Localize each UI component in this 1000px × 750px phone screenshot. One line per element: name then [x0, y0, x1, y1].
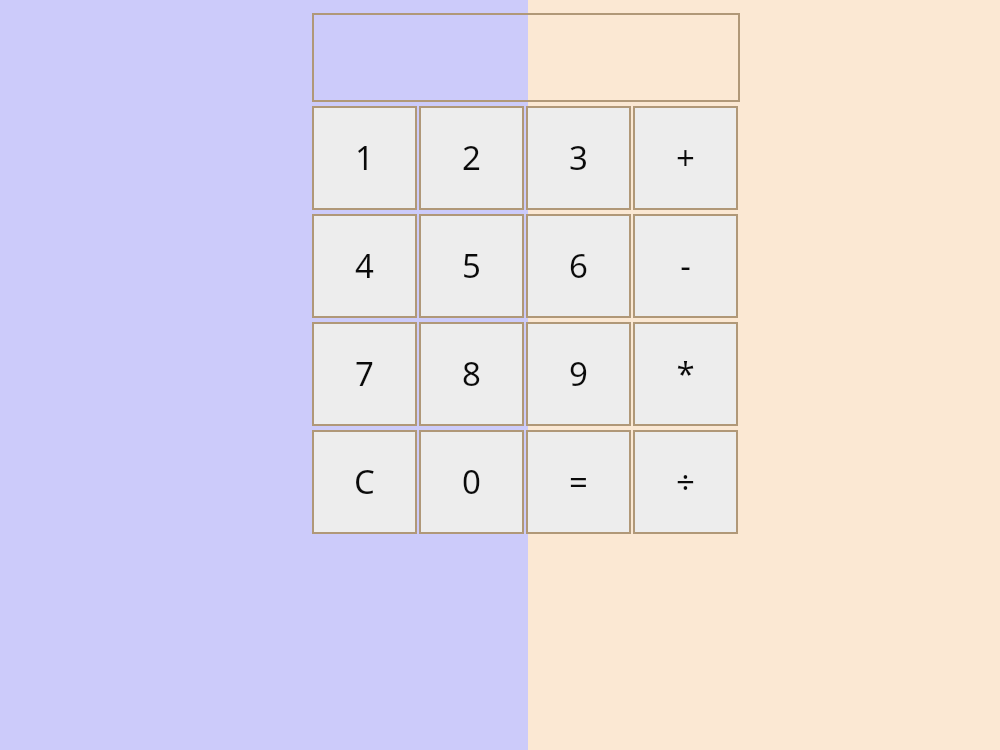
- staticText: +: [676, 135, 695, 180]
- button[interactable]: 8: [419, 322, 524, 426]
- button[interactable]: 2: [419, 106, 524, 210]
- staticText: 7: [355, 351, 374, 396]
- staticText: 3: [569, 135, 588, 180]
- button[interactable]: 6: [526, 214, 631, 318]
- staticText: *: [676, 351, 695, 396]
- staticText: -: [680, 243, 691, 288]
- button[interactable]: Display: [312, 13, 740, 102]
- button[interactable]: 0: [419, 430, 524, 534]
- staticText: 5: [462, 243, 481, 288]
- button[interactable]: C: [312, 430, 417, 534]
- staticText: 1: [355, 135, 374, 180]
- staticText: =: [569, 459, 588, 504]
- staticText: 6: [569, 243, 588, 288]
- button[interactable]: 5: [419, 214, 524, 318]
- staticText: 2: [462, 135, 481, 180]
- button[interactable]: 4: [312, 214, 417, 318]
- button[interactable]: 7: [312, 322, 417, 426]
- button[interactable]: ÷: [633, 430, 738, 534]
- button[interactable]: 3: [526, 106, 631, 210]
- staticText: 4: [355, 243, 374, 288]
- button[interactable]: 1: [312, 106, 417, 210]
- staticText: C: [354, 459, 375, 504]
- button[interactable]: +: [633, 106, 738, 210]
- staticText: 0: [462, 459, 481, 504]
- button[interactable]: *: [633, 322, 738, 426]
- button[interactable]: 9: [526, 322, 631, 426]
- staticText: 9: [569, 351, 588, 396]
- staticText: 8: [462, 351, 481, 396]
- button[interactable]: =: [526, 430, 631, 534]
- button[interactable]: -: [633, 214, 738, 318]
- staticText: ÷: [676, 459, 695, 504]
